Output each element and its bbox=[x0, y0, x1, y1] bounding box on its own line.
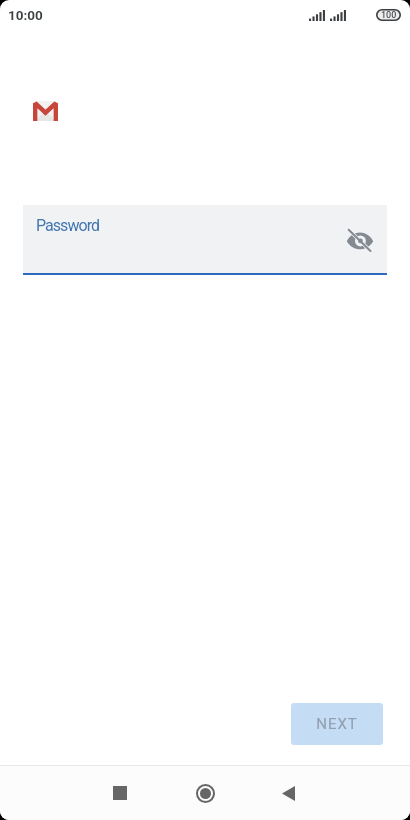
staticText: Password bbox=[36, 216, 100, 235]
staticText: 10:00 bbox=[8, 7, 43, 23]
button[interactable]: Back bbox=[264, 769, 312, 817]
button[interactable]: Show password bbox=[341, 221, 379, 259]
button[interactable]: Password bbox=[23, 205, 387, 275]
button[interactable]: Home bbox=[181, 769, 229, 817]
button[interactable]: Recents bbox=[96, 769, 144, 817]
staticText: 100 bbox=[381, 10, 397, 21]
staticText: NEXT bbox=[316, 715, 358, 733]
button[interactable]: NEXT bbox=[291, 703, 383, 745]
